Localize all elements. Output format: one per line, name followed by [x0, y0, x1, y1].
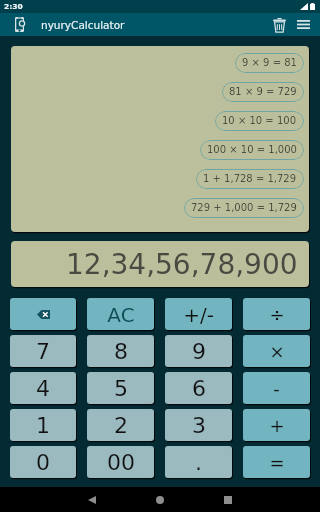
- staticText: 2: [114, 413, 128, 439]
- button[interactable]: -: [243, 372, 310, 404]
- staticText: =: [269, 452, 285, 473]
- staticText: 6: [192, 376, 206, 402]
- staticText: ×: [269, 341, 285, 362]
- staticText: .: [195, 450, 202, 476]
- staticText: 100 × 10 = 1,000: [207, 144, 297, 156]
- staticText: 12,34,56,78,900: [66, 248, 298, 281]
- staticText: 1 + 1,728 = 1,729: [203, 173, 297, 185]
- button[interactable]: 8: [87, 335, 154, 367]
- button[interactable]: 5: [87, 372, 154, 404]
- staticText: -: [273, 378, 280, 399]
- button[interactable]: Recents: [206, 487, 250, 512]
- staticText: 4: [36, 376, 50, 402]
- button[interactable]: 7: [10, 335, 76, 367]
- staticText: 3: [192, 413, 206, 439]
- staticText: 7: [36, 339, 50, 365]
- staticText: 5: [114, 376, 128, 402]
- staticText: 729 + 1,000 = 1,729: [191, 202, 297, 214]
- button[interactable]: Back: [70, 487, 114, 512]
- button[interactable]: AC: [87, 298, 154, 330]
- staticText: 00: [107, 450, 135, 476]
- staticText: 8: [114, 339, 128, 365]
- staticText: AC: [107, 303, 135, 326]
- button[interactable]: Home: [138, 487, 182, 512]
- button[interactable]: 3: [165, 409, 232, 441]
- button[interactable]: .: [165, 446, 232, 478]
- button[interactable]: 1: [10, 409, 76, 441]
- staticText: 9 × 9 = 81: [242, 57, 297, 69]
- staticText: 81 × 9 = 729: [229, 86, 297, 98]
- button[interactable]: 0: [10, 446, 76, 478]
- button[interactable]: +: [243, 409, 310, 441]
- button[interactable]: +/-: [165, 298, 232, 330]
- staticText: +/-: [183, 303, 214, 326]
- staticText: 0: [36, 450, 50, 476]
- staticText: nyuryCalculator: [41, 19, 125, 31]
- button[interactable]: [10, 298, 76, 330]
- button[interactable]: 4: [10, 372, 76, 404]
- button[interactable]: 100 × 10 = 1,000: [200, 140, 304, 160]
- button[interactable]: 9: [165, 335, 232, 367]
- button[interactable]: 00: [87, 446, 154, 478]
- staticText: 9: [192, 339, 206, 365]
- button[interactable]: 9 × 9 = 81: [235, 53, 304, 73]
- button[interactable]: 729 + 1,000 = 1,729: [184, 198, 304, 218]
- button[interactable]: 10 × 10 = 100: [215, 111, 304, 131]
- staticText: 2:30: [4, 2, 23, 11]
- button[interactable]: 2: [87, 409, 154, 441]
- staticText: +: [269, 415, 285, 436]
- button[interactable]: 6: [165, 372, 232, 404]
- button[interactable]: =: [243, 446, 310, 478]
- staticText: 10 × 10 = 100: [222, 115, 297, 127]
- staticText: ÷: [269, 304, 285, 325]
- button[interactable]: Menu: [291, 13, 315, 36]
- button[interactable]: ×: [243, 335, 310, 367]
- button[interactable]: ÷: [243, 298, 310, 330]
- button[interactable]: Clear history: [267, 13, 291, 36]
- button[interactable]: 81 × 9 = 729: [222, 82, 304, 102]
- staticText: 1: [36, 413, 50, 439]
- button[interactable]: 1 + 1,728 = 1,729: [196, 169, 304, 189]
